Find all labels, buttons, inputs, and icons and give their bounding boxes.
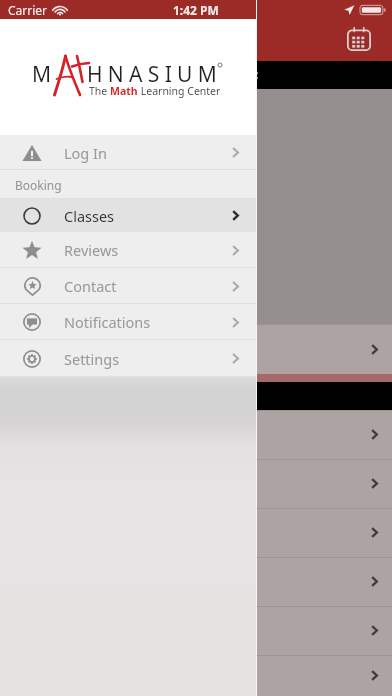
staticText: Reviews (64, 240, 119, 260)
staticText: Contact (64, 276, 117, 296)
button[interactable]: Reviews (0, 232, 256, 268)
staticText: HNASIUM (87, 60, 223, 89)
button[interactable]: Classes (0, 199, 256, 232)
staticText: The (89, 84, 110, 98)
staticText: M (32, 60, 52, 89)
button[interactable]: Open item (0, 606, 392, 655)
button[interactable]: Open item (0, 655, 392, 696)
button[interactable]: Open item (0, 459, 392, 508)
button[interactable]: Open item (0, 410, 392, 459)
button[interactable]: Open item (0, 557, 392, 606)
staticText: Math (110, 84, 138, 98)
staticText: Learning Center (138, 84, 221, 98)
staticText: Classes (64, 206, 115, 226)
button[interactable]: Contact (0, 268, 256, 304)
staticText: 1:42 PM (173, 2, 219, 18)
staticText: Log In (64, 143, 107, 163)
staticText: Booking (15, 177, 62, 193)
staticText: Carrier (8, 2, 48, 18)
button[interactable]: Calendar (337, 17, 381, 61)
button[interactable]: Settings (0, 340, 256, 377)
staticText: Notifications (64, 312, 151, 332)
staticText: Settings (64, 349, 120, 369)
button[interactable]: Open item (0, 324, 392, 374)
button[interactable]: Open item (0, 508, 392, 557)
button[interactable]: Log In (0, 135, 256, 170)
button[interactable]: Notifications (0, 304, 256, 340)
